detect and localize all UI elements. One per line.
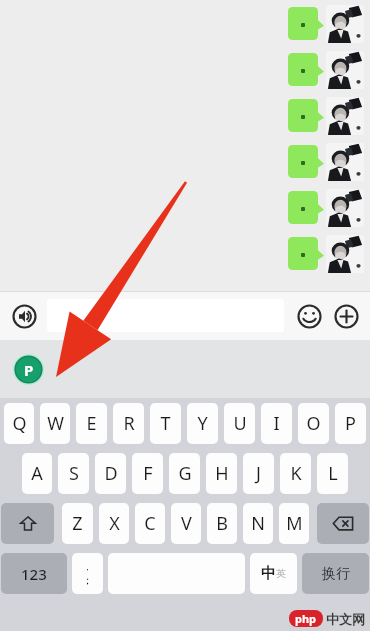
button[interactable]: A [22,453,52,494]
staticText: Q [12,411,27,436]
button[interactable]: Key [250,553,297,594]
staticText: L [328,461,338,486]
button[interactable]: O [298,403,329,444]
button[interactable]: Avatar [326,235,364,273]
button[interactable]: php logo [12,353,44,385]
staticText: B [216,511,228,536]
staticText: Z [72,511,83,536]
staticText: O [306,411,321,436]
button[interactable]: M [279,503,309,544]
button[interactable]: U [224,403,255,444]
staticText: 123 [21,564,47,584]
button[interactable]: Key [317,503,369,544]
button[interactable]: K [280,453,311,494]
button[interactable]: E [76,403,107,444]
button[interactable]: D [95,453,126,494]
button[interactable] [288,191,322,224]
staticText: H [215,461,229,486]
button[interactable]: Key [72,553,103,594]
button[interactable]: Z [62,503,93,544]
button[interactable]: C [135,503,165,544]
staticText: 中文网 [326,611,365,627]
staticText: ， [83,561,92,572]
button[interactable]: J [243,453,274,494]
button[interactable]: Key [302,553,369,594]
staticText: E [86,411,97,436]
staticText: T [160,411,171,436]
staticText: N [251,511,265,536]
button[interactable] [47,299,284,332]
staticText: G [178,461,192,486]
button[interactable]: P [335,403,366,444]
button[interactable]: I [261,403,292,444]
button[interactable]: N [243,503,273,544]
button[interactable] [288,99,322,132]
staticText: W [47,411,64,436]
staticText: X [109,511,120,536]
staticText: I [273,411,280,436]
button[interactable]: S [58,453,89,494]
staticText: php [295,611,317,626]
button[interactable]: R [113,403,144,444]
button[interactable]: F [132,453,163,494]
button[interactable]: Avatar [326,189,364,227]
button[interactable]: Avatar [326,5,364,43]
button[interactable]: H [206,453,237,494]
staticText: P [24,360,34,380]
button[interactable] [288,237,322,270]
button[interactable]: Q [4,403,34,444]
button[interactable]: B [207,503,237,544]
button[interactable]: More [330,300,362,332]
staticText: ； [82,573,93,587]
button[interactable]: X [99,503,129,544]
staticText: C [144,511,156,536]
button[interactable] [288,7,322,40]
staticText: S [69,461,79,486]
staticText: 英 [276,567,286,580]
button[interactable]: Key [1,553,67,594]
staticText: A [31,461,43,486]
button[interactable]: L [317,453,348,494]
staticText: D [104,461,118,486]
staticText: P [345,411,356,436]
button[interactable] [288,145,322,178]
staticText: Y [197,411,208,436]
staticText: V [181,511,192,536]
button[interactable]: Avatar [326,51,364,89]
button[interactable]: W [40,403,70,444]
button[interactable]: Y [187,403,218,444]
button[interactable]: V [171,503,201,544]
staticText: 中 [261,564,276,583]
staticText: J [256,461,261,486]
button[interactable]: Avatar [326,97,364,135]
button[interactable]: G [169,453,200,494]
staticText: K [290,461,302,486]
button[interactable] [288,53,322,86]
button[interactable]: Emoji [293,300,325,332]
button[interactable]: Voice input [8,300,40,332]
button[interactable]: T [150,403,181,444]
staticText: 换行 [322,565,350,583]
button[interactable]: Avatar [326,143,364,181]
staticText: R [123,411,135,436]
staticText: F [143,461,153,486]
staticText: U [233,411,247,436]
staticText: M [286,511,303,536]
button[interactable]: Key [1,503,54,544]
